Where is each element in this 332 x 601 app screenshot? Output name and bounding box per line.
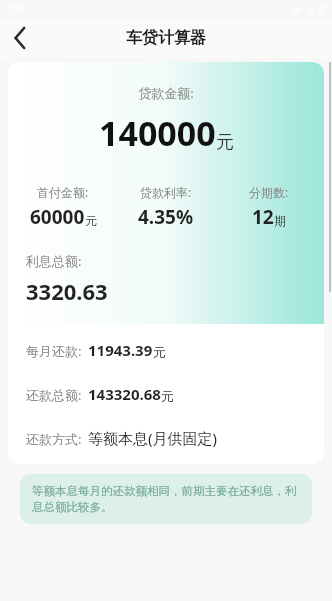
staticText: 还款方式: — [26, 430, 82, 448]
staticText: 143320.68 — [88, 384, 161, 404]
staticText: 元 — [85, 214, 97, 229]
staticText: 等额本息(月供固定) — [88, 428, 218, 448]
staticText: 11943.39 — [88, 340, 153, 360]
staticText: 贷款利率: — [140, 184, 192, 200]
staticText: 元 — [216, 131, 234, 154]
staticText: 利息总额: — [26, 252, 82, 270]
staticText: 3320.63 — [26, 276, 108, 306]
staticText: 60000 — [30, 204, 85, 230]
button[interactable]: Back — [0, 18, 40, 58]
staticText: 4.35% — [138, 204, 194, 230]
staticText: 车贷计算器 — [126, 28, 206, 48]
staticText: 140000 — [99, 110, 216, 156]
staticText: 等额本息每月的还款额相同，前期主要在还利息，利息总额比较多。 — [32, 484, 300, 514]
staticText: 元 — [161, 388, 174, 404]
staticText: 分期数: — [249, 184, 289, 200]
staticText: 期 — [274, 214, 286, 229]
staticText: 12 — [252, 204, 274, 230]
staticText: 首付金额: — [37, 184, 89, 200]
staticText: 每月还款: — [26, 342, 82, 360]
staticText: 元 — [153, 344, 166, 360]
staticText: 还款总额: — [26, 386, 82, 404]
staticText: 贷款金额: — [138, 84, 194, 102]
